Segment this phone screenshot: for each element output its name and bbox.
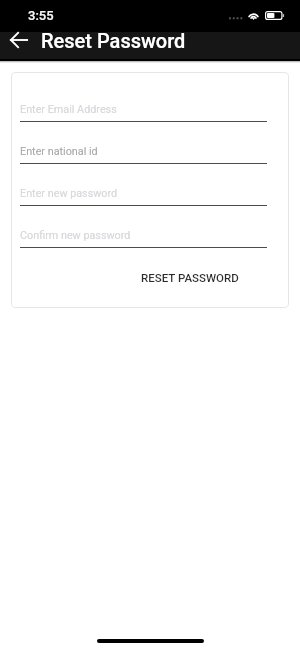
staticText: Enter new password [20,187,118,200]
button[interactable]: Enter new password [20,187,267,206]
button[interactable]: Enter national id [20,145,267,164]
button[interactable]: Confirm new password [20,229,267,248]
staticText: Confirm new password [20,229,131,242]
button[interactable]: RESET PASSWORD [137,264,243,291]
staticText: Enter Email Address [20,103,117,116]
staticText: 3:55 [28,8,54,23]
button[interactable]: Enter Email Address [20,103,267,122]
button[interactable]: Back [4,25,33,54]
staticText: RESET PASSWORD [141,271,239,284]
staticText: Reset Password [41,29,186,52]
staticText: Enter national id [20,145,98,158]
